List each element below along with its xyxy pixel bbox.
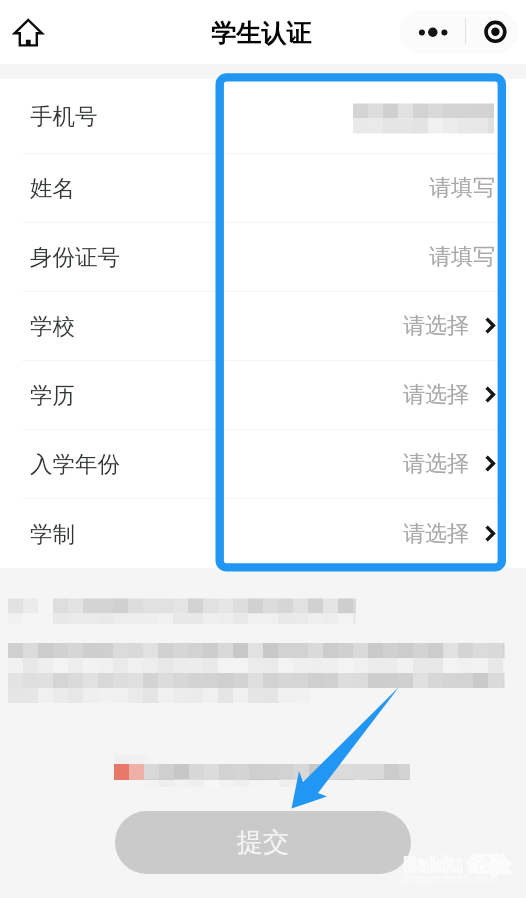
button[interactable]: 学历 [0,360,526,429]
staticText: 提交 [237,826,289,859]
button[interactable]: 入学年份 [0,429,526,498]
button[interactable]: 手机号 [0,79,526,153]
button[interactable]: More options [400,10,465,54]
button[interactable]: Home [4,4,52,52]
staticText: 姓名 [30,174,75,202]
staticText: 请选择 [403,450,469,478]
staticText: 学制 [30,520,75,548]
staticText: 学校 [30,312,75,340]
staticText: 身份证号 [30,243,120,271]
staticText: 请选择 [403,520,469,548]
button[interactable]: 提交 [115,811,411,874]
staticText: 请选择 [403,312,469,340]
staticText: 学历 [30,381,75,409]
staticText: 请填写 [429,174,495,202]
staticText: 入学年份 [30,450,120,478]
button[interactable]: Close mini program [466,10,518,54]
staticText: 手机号 [30,102,98,130]
staticText: 请选择 [403,381,469,409]
button[interactable]: 学校 [0,291,526,360]
staticText: 学生认证 [211,18,311,49]
button[interactable]: 学制 [0,499,526,568]
staticText: 请填写 [429,243,495,271]
button[interactable]: 姓名 [0,153,526,222]
staticText: Baidu 经验 [403,850,511,879]
button[interactable]: 身份证号 [0,222,526,291]
